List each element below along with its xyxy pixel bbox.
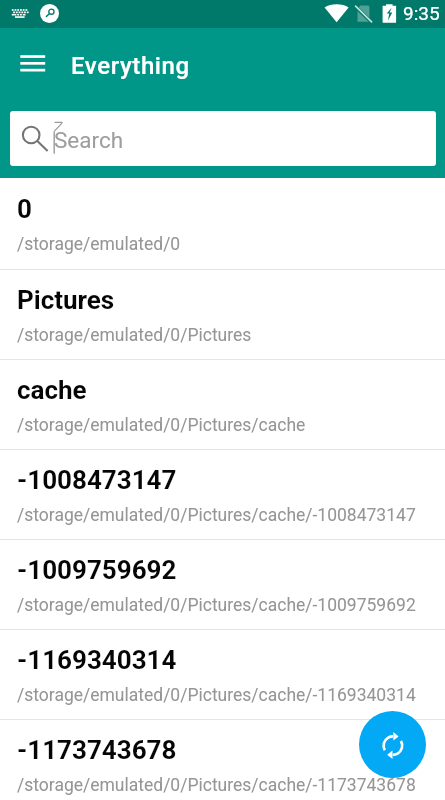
- button[interactable]: 0: [0, 178, 445, 269]
- staticText: /storage/emulated/0/Pictures/cache: [17, 415, 306, 436]
- button[interactable]: Pictures: [0, 269, 445, 359]
- staticText: -1173743678: [17, 735, 177, 765]
- button[interactable]: Open navigation drawer: [9, 41, 55, 87]
- button[interactable]: cache: [0, 359, 445, 449]
- staticText: 9:35: [403, 2, 440, 24]
- staticText: /storage/emulated/0/Pictures/cache/-1008…: [17, 505, 416, 526]
- button[interactable]: Refresh: [359, 711, 426, 778]
- staticText: cache: [17, 375, 87, 405]
- staticText: 0: [17, 194, 32, 224]
- staticText: Pictures: [17, 285, 115, 315]
- staticText: -1008473147: [17, 465, 177, 495]
- staticText: -1009759692: [17, 555, 177, 585]
- staticText: /storage/emulated/0/Pictures/cache/-1169…: [17, 685, 416, 706]
- staticText: -1169340314: [17, 645, 177, 675]
- staticText: Everything: [71, 52, 190, 80]
- staticText: /storage/emulated/0/Pictures/cache/-1009…: [17, 595, 416, 616]
- button[interactable]: -1169340314: [0, 629, 445, 719]
- staticText: /storage/emulated/0/Pictures/cache/-1173…: [17, 775, 416, 796]
- staticText: Search: [54, 127, 124, 153]
- button[interactable]: -1173743678: [0, 719, 445, 800]
- staticText: /storage/emulated/0/Pictures: [17, 325, 252, 346]
- button[interactable]: -1009759692: [0, 539, 445, 629]
- button[interactable]: -1008473147: [0, 449, 445, 539]
- button[interactable]: Search: [10, 111, 436, 166]
- staticText: /storage/emulated/0: [17, 234, 181, 255]
